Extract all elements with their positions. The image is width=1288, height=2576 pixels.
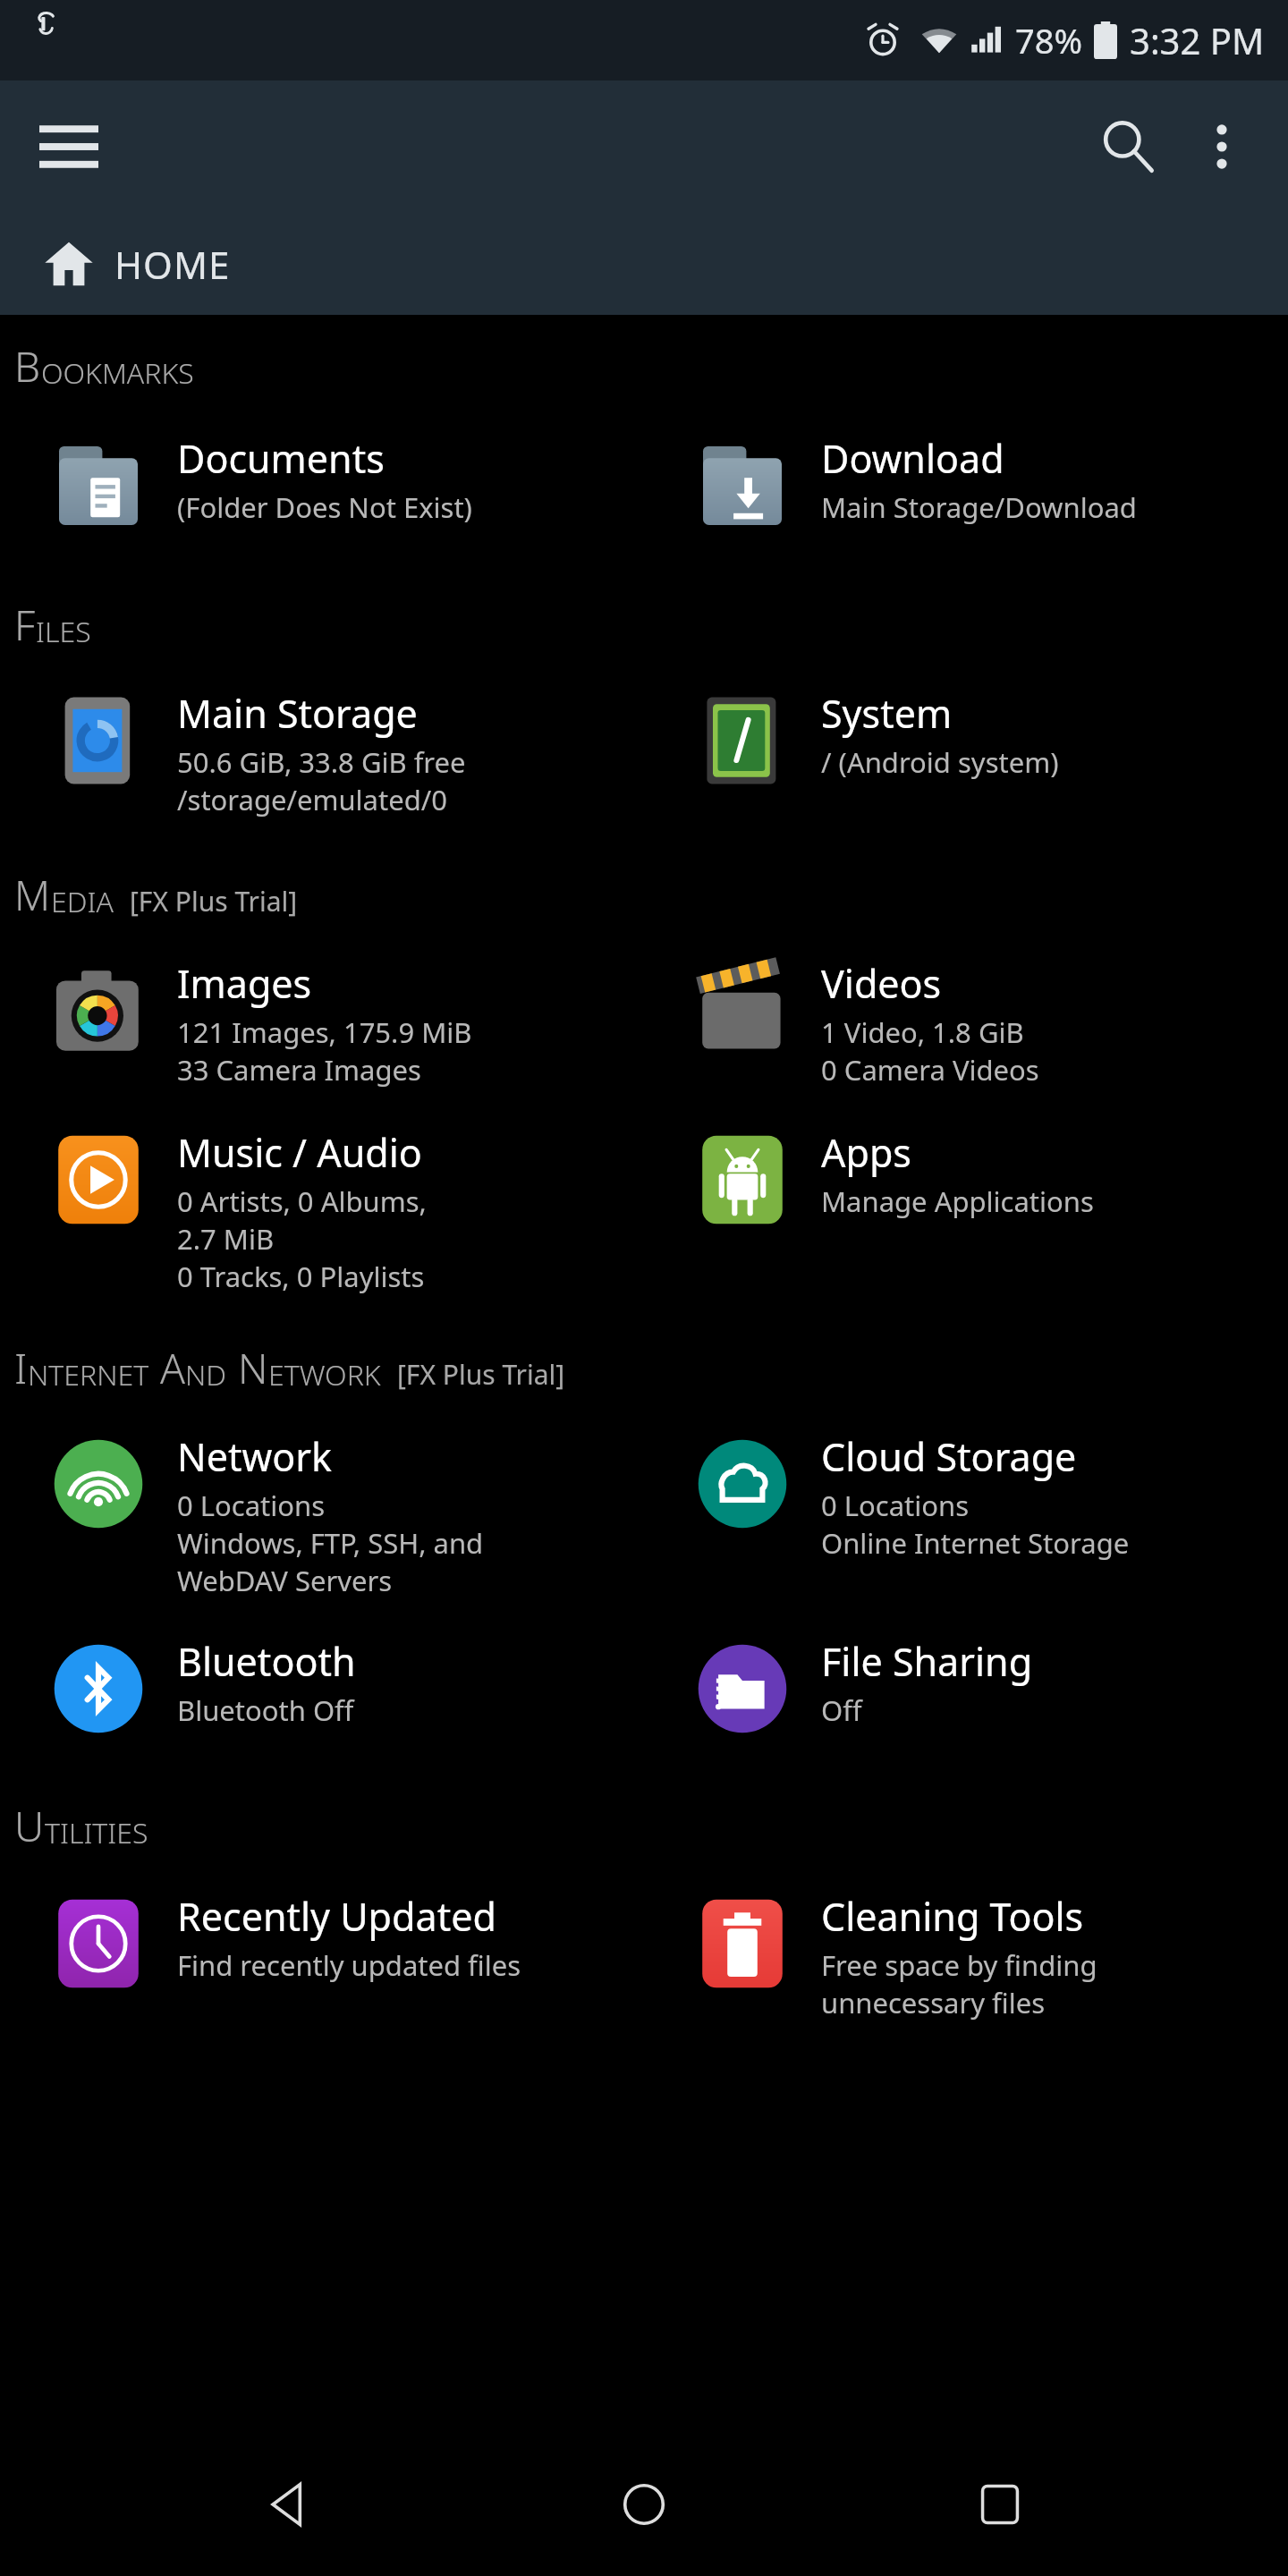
staticText: ILES	[36, 612, 91, 651]
button[interactable]: Documents	[0, 427, 644, 545]
staticText: Main Storage/Download	[821, 488, 1137, 526]
staticText: Online Internet Storage	[821, 1524, 1130, 1562]
button[interactable]: Recent apps	[933, 2437, 1067, 2572]
staticText: Bluetooth Off	[177, 1691, 354, 1729]
staticText: [FX Plus Trial]	[130, 883, 298, 919]
button[interactable]: Music / Audio	[0, 1121, 644, 1299]
staticText: N	[238, 1340, 268, 1396]
button[interactable]: File Sharing	[644, 1630, 1288, 1748]
staticText: Recently Updated	[177, 1890, 496, 1943]
staticText: 0 Locations	[177, 1487, 326, 1524]
staticText: M	[14, 867, 51, 923]
staticText: Documents	[177, 432, 385, 485]
staticText: System	[821, 687, 953, 740]
staticText: WebDAV Servers	[177, 1562, 393, 1599]
staticText: NTERNET	[28, 1355, 149, 1394]
staticText: Cleaning Tools	[821, 1890, 1084, 1943]
staticText: OOKMARKS	[41, 353, 194, 393]
staticText: 121 Images, 175.9 MiB	[177, 1013, 472, 1051]
button[interactable]: Search	[1079, 97, 1177, 196]
button[interactable]: Recently Updated	[0, 1885, 644, 2003]
button[interactable]: More options	[1177, 102, 1267, 191]
staticText: 0 Artists, 0 Albums,	[177, 1182, 427, 1220]
staticText: EDIA	[51, 882, 114, 921]
staticText: Images	[177, 957, 312, 1010]
staticText: 33 Camera Images	[177, 1051, 421, 1089]
staticText: 1 Video, 1.8 GiB	[821, 1013, 1024, 1051]
staticText: 0 Locations	[821, 1487, 970, 1524]
button[interactable]: Cloud Storage	[644, 1425, 1288, 1565]
staticText: Download	[821, 432, 1004, 485]
button[interactable]: Back	[222, 2437, 356, 2572]
staticText: F	[14, 597, 36, 653]
staticText: Network	[177, 1430, 332, 1483]
staticText: unnecessary files	[821, 1984, 1046, 2021]
staticText: Videos	[821, 957, 942, 1010]
button[interactable]: Home	[577, 2437, 711, 2572]
staticText: 78%	[1015, 17, 1083, 64]
staticText: 2.7 MiB	[177, 1220, 275, 1258]
staticText: ETWORK	[268, 1355, 381, 1394]
button[interactable]: Download	[644, 427, 1288, 545]
staticText: Manage Applications	[821, 1182, 1094, 1220]
staticText: Apps	[821, 1126, 911, 1179]
staticText: Main Storage	[177, 687, 418, 740]
staticText: Free space by finding	[821, 1946, 1097, 1984]
button[interactable]: Bluetooth	[0, 1630, 644, 1748]
staticText: / (Android system)	[821, 743, 1059, 781]
staticText: [FX Plus Trial]	[397, 1356, 565, 1393]
staticText: 3:32 PM	[1130, 16, 1265, 64]
staticText: Find recently updated files	[177, 1946, 521, 1984]
button[interactable]: Videos	[644, 952, 1288, 1092]
staticText: /storage/emulated/0	[177, 781, 448, 818]
button[interactable]: Main Storage	[0, 682, 644, 822]
button[interactable]: Images	[0, 952, 644, 1092]
staticText: (Folder Does Not Exist)	[177, 488, 472, 526]
staticText: Music / Audio	[177, 1126, 422, 1179]
staticText: ND	[185, 1355, 227, 1394]
button[interactable]: HOME	[0, 213, 1288, 315]
staticText: File Sharing	[821, 1635, 1033, 1688]
staticText: 0 Tracks, 0 Playlists	[177, 1258, 425, 1295]
staticText: 50.6 GiB, 33.8 GiB free	[177, 743, 466, 781]
staticText: HOME	[114, 239, 231, 290]
staticText: B	[14, 338, 41, 394]
staticText: Off	[821, 1691, 862, 1729]
staticText: 0 Camera Videos	[821, 1051, 1039, 1089]
staticText: Windows, FTP, SSH, and	[177, 1524, 484, 1562]
button[interactable]: Network	[0, 1425, 644, 1603]
staticText: U	[14, 1798, 45, 1854]
staticText: I	[14, 1340, 28, 1396]
staticText: Cloud Storage	[821, 1430, 1077, 1483]
staticText: Bluetooth	[177, 1635, 356, 1688]
button[interactable]: System	[644, 682, 1288, 800]
button[interactable]: Open navigation drawer	[20, 97, 118, 196]
button[interactable]: Apps	[644, 1121, 1288, 1239]
button[interactable]: Cleaning Tools	[644, 1885, 1288, 2025]
staticText: TILITIES	[45, 1813, 148, 1852]
staticText: A	[160, 1340, 185, 1396]
